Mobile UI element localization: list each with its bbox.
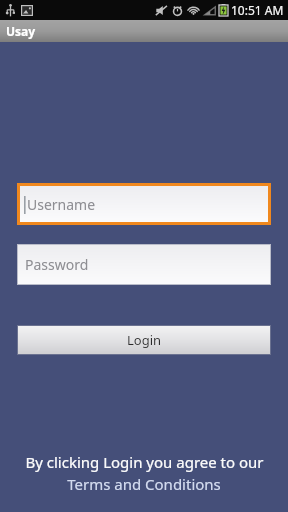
staticText: 10:51 AM [231,2,284,18]
staticText: Login [127,331,162,349]
staticText: By clicking Login you agree to our [25,452,264,472]
button[interactable]: Username [20,186,268,222]
staticText: Usay [6,23,36,39]
staticText: Username [27,195,96,214]
button[interactable]: Password [18,245,270,284]
button[interactable]: Terms and Conditions [67,474,221,494]
staticText: Terms and Conditions [67,474,221,494]
button[interactable]: Login [18,326,270,354]
staticText: Password [25,255,89,274]
